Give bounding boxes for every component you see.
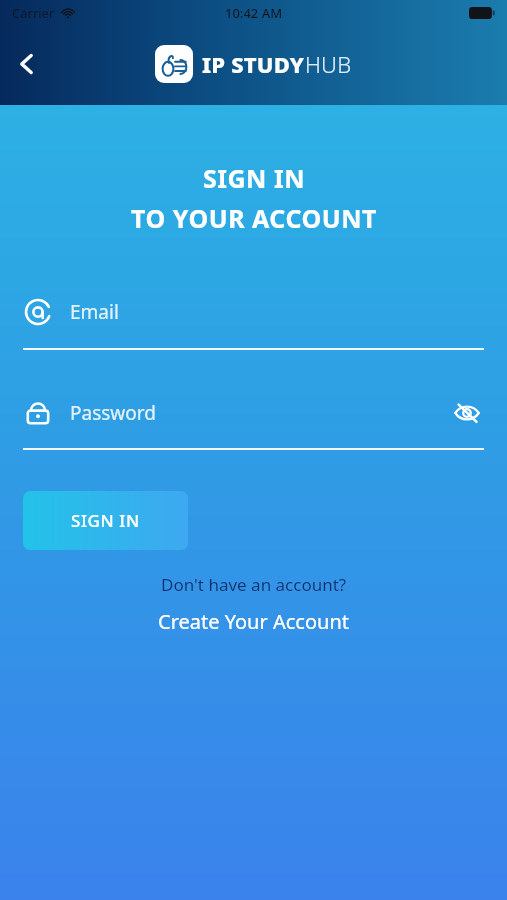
staticText: SIGN IN [203, 161, 305, 195]
button[interactable]: Create Your Account [152, 606, 355, 637]
staticText: Don't have an account? [161, 573, 347, 596]
staticText: SIGN IN [71, 509, 140, 532]
staticText: HUB [305, 49, 352, 79]
button[interactable]: Back [0, 37, 54, 91]
button[interactable]: Show password [450, 396, 484, 430]
staticText: TO YOUR ACCOUNT [131, 201, 377, 235]
staticText: IP STUDY [202, 49, 305, 79]
staticText: Email [70, 299, 119, 325]
staticText: 10:42 AM [225, 4, 283, 22]
staticText: Carrier [12, 4, 55, 22]
button[interactable]: Password [23, 396, 484, 450]
button[interactable]: SIGN IN [23, 491, 188, 550]
staticText: Password [70, 400, 156, 426]
button[interactable]: Email [23, 297, 484, 350]
staticText: Create Your Account [158, 608, 349, 635]
